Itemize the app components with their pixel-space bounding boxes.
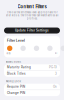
staticText: All [55, 52, 58, 55]
staticText: Change PIN [7, 91, 25, 95]
staticText: PROFILE LOCK [5, 80, 21, 83]
button[interactable]: Require PIN [4, 84, 60, 90]
staticText: PG-13 [49, 66, 57, 69]
staticText: Block Titles [7, 72, 25, 75]
staticText: RESTRICTIONS [5, 61, 20, 63]
staticText: Kids [6, 52, 10, 55]
staticText: Require PIN [7, 85, 25, 88]
staticText: Update Filter Settings [15, 29, 49, 32]
staticText: Maturity Rating [7, 66, 31, 69]
staticText: Choose the strictness level appropriate … [5, 11, 58, 20]
staticText: Filter Level [7, 39, 25, 42]
button[interactable]: Change PIN [4, 90, 60, 96]
button[interactable]: Maturity Rating [4, 64, 60, 71]
button[interactable]: Block Titles [4, 71, 60, 77]
staticText: On [53, 85, 57, 88]
button[interactable]: Update Filter Settings [4, 27, 60, 33]
staticText: Content Filters [17, 4, 46, 9]
staticText: 3 [55, 72, 57, 75]
